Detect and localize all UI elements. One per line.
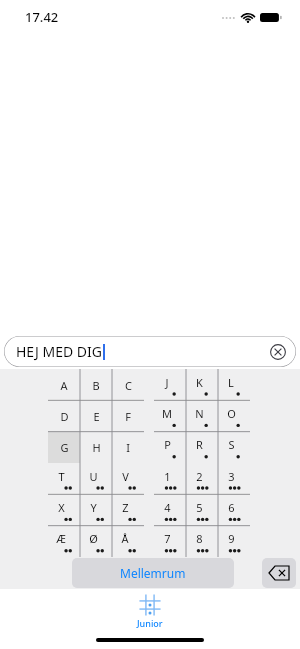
staticText: 2 <box>196 469 203 484</box>
staticText: 3 <box>228 469 235 484</box>
staticText: 9 <box>228 531 235 546</box>
button[interactable]: P <box>154 432 186 463</box>
staticText: B <box>92 378 100 393</box>
staticText: 7 <box>164 531 171 546</box>
button[interactable]: R <box>186 432 218 463</box>
staticText: 5 <box>196 500 203 515</box>
button[interactable]: A <box>48 369 80 401</box>
button[interactable]: Delete <box>262 558 296 588</box>
button[interactable]: Y <box>80 495 112 526</box>
button[interactable]: 6 <box>218 495 250 526</box>
staticText: Y <box>90 500 97 515</box>
button[interactable]: X <box>48 495 80 526</box>
staticText: L <box>228 375 234 390</box>
button[interactable]: 1 <box>154 463 186 495</box>
staticText: 6 <box>228 500 235 515</box>
button[interactable]: T <box>48 463 80 495</box>
button[interactable]: 2 <box>186 463 218 495</box>
button[interactable]: Ø <box>80 526 112 557</box>
staticText: 4 <box>164 500 171 515</box>
staticText: H <box>92 440 101 455</box>
button[interactable]: 8 <box>186 526 218 557</box>
staticText: Å <box>121 531 129 546</box>
button[interactable]: Å <box>112 526 144 557</box>
button[interactable]: I <box>112 432 144 463</box>
staticText: E <box>93 409 100 424</box>
staticText: N <box>195 406 204 421</box>
button[interactable]: G <box>48 432 80 463</box>
button[interactable]: D <box>48 401 80 432</box>
button[interactable]: U <box>80 463 112 495</box>
button[interactable]: 3 <box>218 463 250 495</box>
button[interactable]: N <box>186 401 218 432</box>
staticText: 8 <box>196 531 203 546</box>
button[interactable]: J <box>154 369 186 401</box>
button[interactable]: H <box>80 432 112 463</box>
button[interactable]: E <box>80 401 112 432</box>
button[interactable]: Æ <box>48 526 80 557</box>
staticText: R <box>196 437 203 452</box>
button[interactable]: F <box>112 401 144 432</box>
staticText: S <box>228 437 235 452</box>
staticText: X <box>58 500 65 515</box>
staticText: Mellemrum <box>120 565 186 581</box>
button[interactable]: Mellemrum <box>72 558 234 588</box>
staticText: 17.42 <box>25 8 59 26</box>
staticText: G <box>60 440 69 455</box>
button[interactable]: B <box>80 369 112 401</box>
staticText: I <box>126 440 130 455</box>
button[interactable]: O <box>218 401 250 432</box>
button[interactable]: C <box>112 369 144 401</box>
staticText: T <box>58 469 65 484</box>
staticText: D <box>60 409 69 424</box>
staticText: O <box>227 406 236 421</box>
button[interactable]: M <box>154 401 186 432</box>
staticText: J <box>165 375 169 390</box>
button[interactable]: L <box>218 369 250 401</box>
button[interactable]: HEJ MED DIG <box>4 336 296 367</box>
staticText: K <box>196 375 203 390</box>
button[interactable]: 7 <box>154 526 186 557</box>
button[interactable]: 5 <box>186 495 218 526</box>
staticText: Z <box>122 500 129 515</box>
staticText: Æ <box>56 531 66 546</box>
staticText: A <box>60 378 68 393</box>
staticText: Ø <box>89 531 98 546</box>
staticText: C <box>125 378 132 393</box>
button[interactable]: Junior keyboard <box>137 593 163 629</box>
button[interactable]: Z <box>112 495 144 526</box>
staticText: U <box>89 469 98 484</box>
button[interactable]: 9 <box>218 526 250 557</box>
staticText: Junior <box>137 617 163 629</box>
staticText: F <box>125 409 131 424</box>
staticText: P <box>164 437 171 452</box>
staticText: 1 <box>164 469 171 484</box>
button[interactable]: V <box>112 463 144 495</box>
staticText: M <box>162 406 172 421</box>
button[interactable]: S <box>218 432 250 463</box>
button[interactable]: 4 <box>154 495 186 526</box>
staticText: V <box>122 469 129 484</box>
button[interactable]: Clear text <box>270 344 286 360</box>
staticText: HEJ MED DIG <box>16 342 102 361</box>
button[interactable]: K <box>186 369 218 401</box>
